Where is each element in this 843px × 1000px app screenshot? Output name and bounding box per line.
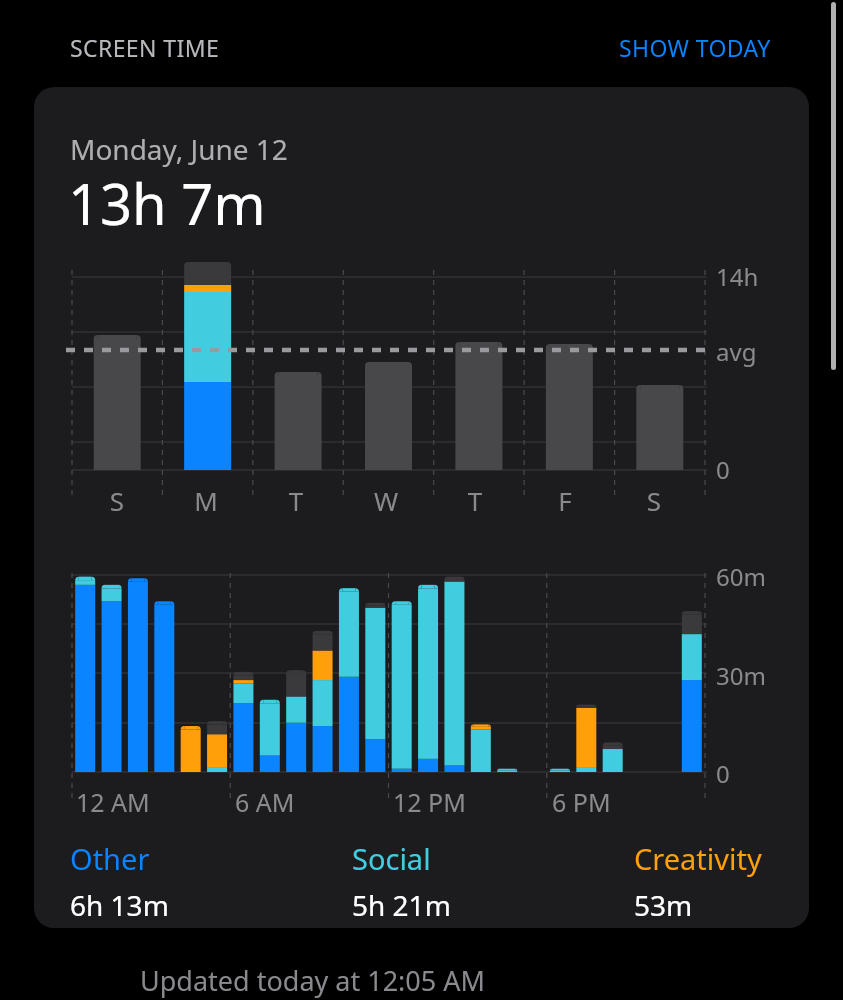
- staticText: S: [634, 483, 674, 518]
- staticText: 30m: [716, 659, 766, 692]
- staticText: F: [545, 483, 585, 518]
- staticText: Monday, June 12: [70, 130, 288, 168]
- staticText: 6 AM: [235, 785, 295, 819]
- staticText: Social: [352, 839, 431, 878]
- button[interactable]: Other: [70, 839, 320, 924]
- staticText: 60m: [716, 560, 766, 593]
- staticText: Updated today at 12:05 AM: [140, 962, 486, 999]
- staticText: T: [276, 483, 316, 518]
- staticText: 53m: [634, 886, 693, 924]
- button[interactable]: Social: [352, 839, 602, 924]
- button[interactable]: Monday, June 12: [34, 87, 809, 928]
- staticText: T: [455, 483, 495, 518]
- staticText: 14h: [716, 260, 759, 293]
- staticText: 6 PM: [552, 785, 611, 819]
- staticText: 0: [716, 453, 730, 486]
- staticText: M: [186, 483, 226, 518]
- staticText: 12 AM: [76, 785, 150, 819]
- staticText: 6h 13m: [70, 886, 169, 924]
- staticText: 5h 21m: [352, 886, 451, 924]
- staticText: SHOW TODAY: [619, 32, 771, 63]
- staticText: 12 PM: [393, 785, 466, 819]
- staticText: W: [366, 483, 406, 518]
- staticText: Other: [70, 839, 150, 878]
- staticText: Creativity: [634, 839, 762, 878]
- button[interactable]: SHOW TODAY: [619, 32, 771, 63]
- staticText: 0: [716, 757, 730, 790]
- button[interactable]: Creativity: [634, 839, 809, 924]
- staticText: avg: [716, 335, 757, 368]
- staticText: S: [97, 483, 137, 518]
- staticText: SCREEN TIME: [70, 32, 220, 63]
- staticText: 13h 7m: [68, 165, 266, 241]
